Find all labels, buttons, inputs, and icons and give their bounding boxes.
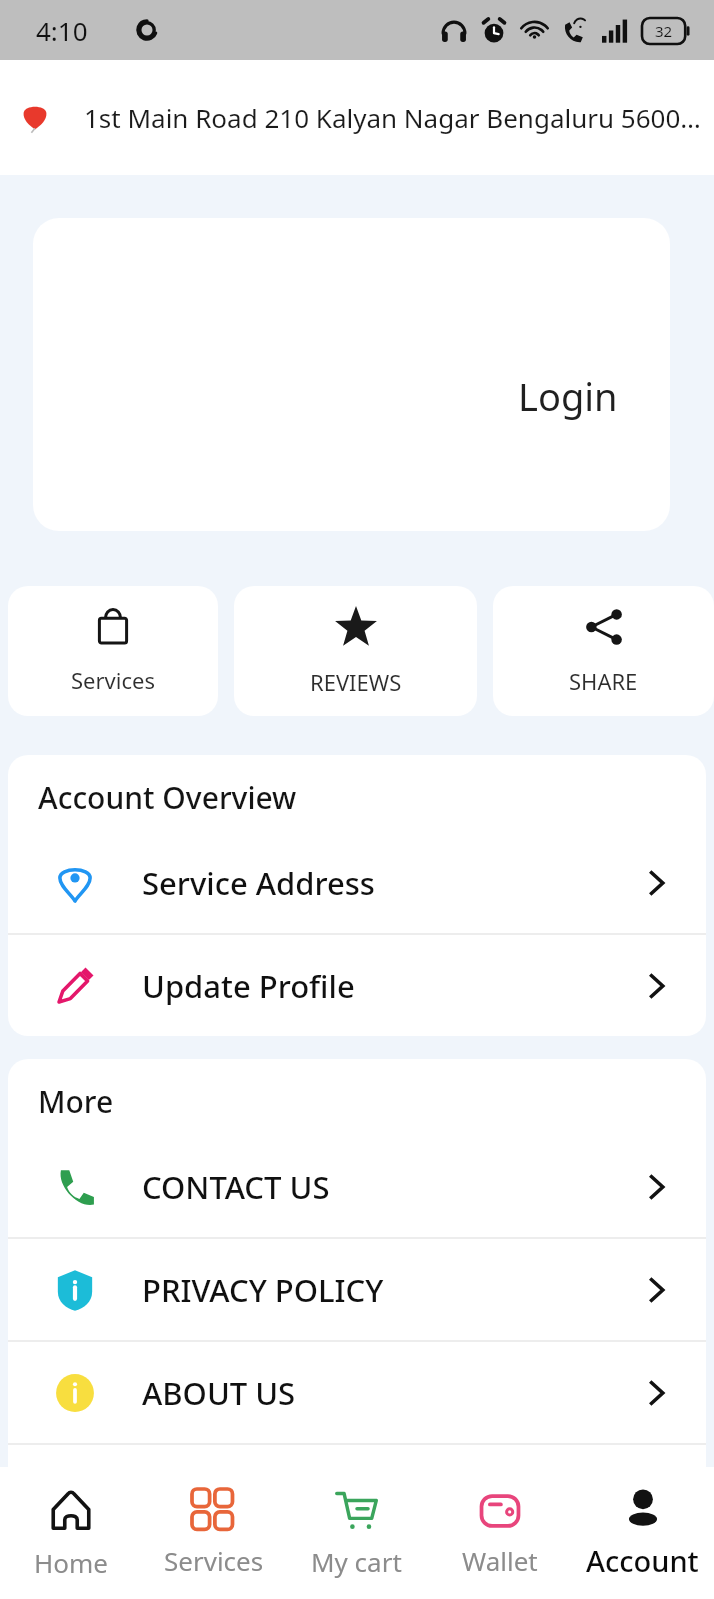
staticText: ABOUT US bbox=[142, 1372, 606, 1414]
button[interactable]: Update Profile bbox=[8, 935, 706, 1036]
button[interactable]: PRIVACY POLICY bbox=[8, 1239, 706, 1340]
staticText: More bbox=[38, 1081, 114, 1122]
staticText: TERMS AND CONDITIONS bbox=[142, 1475, 606, 1517]
staticText: Services bbox=[164, 1543, 264, 1578]
button[interactable]: Home bbox=[0, 1467, 142, 1599]
staticText: Account bbox=[586, 1541, 699, 1580]
staticText: Update Profile bbox=[142, 965, 606, 1007]
other: Account bbox=[621, 1487, 665, 1531]
staticText: REVIEWS bbox=[310, 667, 402, 697]
staticText: 1st Main Road 210 Kalyan Nagar Bengaluru… bbox=[84, 100, 702, 135]
staticText: PRIVACY POLICY bbox=[142, 1269, 606, 1311]
staticText: Services bbox=[71, 665, 155, 695]
button[interactable]: TERMS AND CONDITIONS bbox=[8, 1445, 706, 1546]
button[interactable]: CONTACT US bbox=[8, 1136, 706, 1237]
button[interactable]: 1st Main Road 210 Kalyan Nagar Bengaluru… bbox=[0, 60, 714, 175]
other: Wallet bbox=[478, 1489, 522, 1533]
other: Services bbox=[192, 1489, 236, 1533]
button[interactable]: Services bbox=[8, 586, 218, 716]
button[interactable]: Services bbox=[142, 1467, 285, 1599]
button[interactable]: Service Address bbox=[8, 832, 706, 933]
staticText: 32 bbox=[655, 21, 673, 41]
staticText: Login bbox=[518, 370, 618, 422]
button[interactable]: ABOUT US bbox=[8, 1342, 706, 1443]
staticText: Wallet bbox=[462, 1543, 538, 1578]
staticText: 4:10 bbox=[36, 13, 88, 48]
button[interactable]: REVIEWS bbox=[234, 586, 477, 716]
staticText: My cart bbox=[311, 1544, 402, 1579]
button[interactable]: My cart bbox=[285, 1467, 428, 1599]
button[interactable]: Wallet bbox=[428, 1467, 571, 1599]
button[interactable]: Account bbox=[571, 1467, 714, 1599]
other: Home bbox=[47, 1487, 95, 1535]
staticText: Service Address bbox=[142, 862, 606, 904]
staticText: SHARE bbox=[569, 666, 638, 696]
staticText: Account Overview bbox=[38, 777, 297, 818]
button[interactable]: SHARE bbox=[493, 586, 714, 716]
staticText: Home bbox=[34, 1545, 108, 1580]
other: My cart bbox=[334, 1488, 380, 1534]
staticText: CONTACT US bbox=[142, 1166, 606, 1208]
button[interactable]: Login bbox=[33, 218, 670, 531]
